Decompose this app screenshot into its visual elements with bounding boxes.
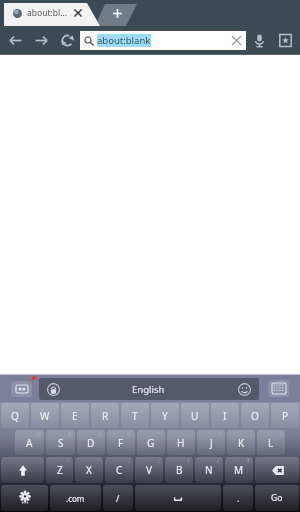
- button[interactable]: English: [39, 378, 259, 400]
- button[interactable]: Symbols: [1, 485, 48, 511]
- button[interactable]: M: [225, 457, 253, 483]
- staticText: T: [132, 409, 138, 423]
- staticText: A: [26, 436, 33, 450]
- button[interactable]: L: [257, 430, 285, 455]
- staticText: /: [116, 492, 120, 504]
- staticText: P: [282, 409, 289, 423]
- button[interactable]: Forward: [28, 26, 54, 54]
- staticText: M: [234, 463, 244, 477]
- staticText: U: [191, 409, 199, 423]
- button[interactable]: Clear: [229, 33, 244, 48]
- staticText: B: [176, 463, 183, 477]
- staticText: O: [251, 409, 259, 423]
- button[interactable]: Go: [255, 485, 299, 511]
- button[interactable]: Back: [2, 26, 28, 54]
- button[interactable]: Reload: [54, 26, 80, 54]
- staticText: G: [147, 436, 155, 450]
- staticText: #: [68, 430, 72, 437]
- button[interactable]: H: [167, 430, 195, 455]
- button[interactable]: K: [227, 430, 255, 455]
- button[interactable]: Space: [135, 485, 221, 511]
- staticText: I: [223, 409, 227, 423]
- button[interactable]: Keyboard settings: [11, 381, 32, 397]
- button[interactable]: .: [223, 485, 253, 511]
- button[interactable]: A: [15, 430, 44, 455]
- staticText: ': [98, 457, 100, 464]
- button[interactable]: Delete: [255, 457, 299, 483]
- button[interactable]: about:bl…: [4, 0, 100, 26]
- button[interactable]: Voice search: [246, 26, 272, 54]
- button[interactable]: I: [211, 403, 239, 428]
- button[interactable]: R: [91, 403, 119, 428]
- staticText: N: [205, 463, 213, 477]
- staticText: .: [237, 492, 240, 504]
- staticText: R: [102, 409, 109, 423]
- button[interactable]: Hide keyboard: [268, 380, 289, 397]
- staticText: &: [127, 430, 132, 437]
- staticText: Y: [162, 409, 168, 423]
- button[interactable]: O: [241, 403, 269, 428]
- staticText: ): [280, 430, 282, 437]
- button[interactable]: F: [107, 430, 135, 455]
- staticText: S: [58, 436, 64, 450]
- button[interactable]: Shift: [1, 457, 44, 483]
- staticText: +: [218, 430, 222, 437]
- staticText: *: [158, 430, 162, 437]
- button[interactable]: Z: [46, 457, 73, 483]
- staticText: E: [72, 409, 78, 423]
- button[interactable]: Close tab: [72, 7, 84, 19]
- staticText: ;: [158, 457, 160, 464]
- button[interactable]: about:blank: [80, 31, 246, 50]
- staticText: @: [36, 430, 41, 437]
- staticText: about:blank: [97, 34, 151, 47]
- staticText: V: [146, 463, 152, 477]
- staticText: English: [132, 383, 165, 396]
- staticText: Q: [11, 409, 19, 423]
- button[interactable]: E: [61, 403, 89, 428]
- button[interactable]: S: [46, 430, 75, 455]
- staticText: L: [268, 436, 274, 450]
- button[interactable]: D: [77, 430, 105, 455]
- staticText: :: [128, 457, 130, 464]
- staticText: !: [188, 457, 190, 464]
- staticText: $: [98, 430, 102, 437]
- button[interactable]: New tab: [95, 0, 139, 26]
- button[interactable]: T: [121, 403, 149, 428]
- staticText: about:bl…: [27, 7, 67, 19]
- staticText: /: [217, 457, 220, 464]
- button[interactable]: U: [181, 403, 209, 428]
- button[interactable]: G: [137, 430, 165, 455]
- button[interactable]: Q: [1, 403, 29, 428]
- staticText: -: [190, 430, 192, 437]
- button[interactable]: X: [75, 457, 103, 483]
- button[interactable]: V: [135, 457, 163, 483]
- button[interactable]: J: [197, 430, 225, 455]
- staticText: F: [118, 436, 124, 450]
- staticText: H: [177, 436, 185, 450]
- button[interactable]: .com: [50, 485, 101, 511]
- button[interactable]: Y: [151, 403, 179, 428]
- button[interactable]: C: [105, 457, 133, 483]
- button[interactable]: /: [103, 485, 133, 511]
- staticText: J: [210, 436, 213, 450]
- staticText: C: [116, 463, 123, 477]
- button[interactable]: B: [165, 457, 193, 483]
- button[interactable]: Bookmarks: [272, 26, 298, 54]
- button[interactable]: W: [31, 403, 59, 428]
- staticText: W: [40, 409, 50, 423]
- staticText: .com: [66, 493, 85, 504]
- staticText: K: [238, 436, 245, 450]
- button[interactable]: N: [195, 457, 223, 483]
- staticText: Go: [271, 492, 283, 504]
- staticText: ": [67, 457, 70, 464]
- button[interactable]: P: [271, 403, 299, 428]
